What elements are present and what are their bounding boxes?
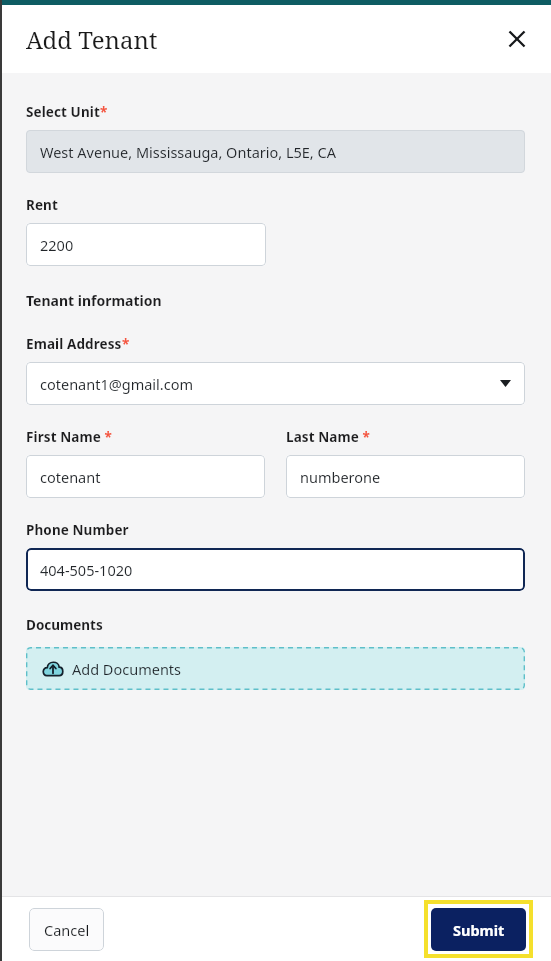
- staticText: Email Address: [26, 335, 122, 353]
- button[interactable]: cotenant: [26, 455, 265, 498]
- button[interactable]: 2200: [26, 223, 266, 266]
- staticText: *: [122, 335, 130, 353]
- button[interactable]: 404-505-1020: [26, 548, 525, 591]
- staticText: *: [101, 428, 112, 446]
- staticText: Rent: [26, 196, 58, 214]
- button[interactable]: Add Documents: [26, 647, 525, 690]
- staticText: Last Name: [286, 428, 359, 446]
- staticText: cotenant: [40, 467, 101, 487]
- staticText: 2200: [40, 235, 74, 255]
- button[interactable]: Close: [497, 19, 537, 59]
- staticText: Documents: [26, 616, 103, 634]
- staticText: West Avenue, Mississauga, Ontario, L5E, …: [40, 142, 336, 162]
- staticText: Cancel: [44, 920, 90, 940]
- button[interactable]: Cancel: [29, 908, 104, 951]
- button[interactable]: cotenant1@gmail.com: [26, 362, 525, 405]
- staticText: *: [100, 103, 108, 121]
- button[interactable]: West Avenue, Mississauga, Ontario, L5E, …: [26, 130, 525, 173]
- staticText: Add Documents: [72, 659, 182, 679]
- button[interactable]: numberone: [286, 455, 525, 498]
- staticText: First Name: [26, 428, 101, 446]
- staticText: cotenant1@gmail.com: [40, 374, 194, 394]
- staticText: Tenant information: [26, 291, 162, 310]
- staticText: Submit: [453, 920, 505, 940]
- staticText: numberone: [300, 467, 381, 487]
- button[interactable]: Submit: [428, 904, 529, 954]
- staticText: Phone Number: [26, 521, 129, 539]
- staticText: Select Unit: [26, 103, 100, 121]
- staticText: *: [359, 428, 370, 446]
- staticText: 404-505-1020: [40, 560, 133, 580]
- staticText: Add Tenant: [26, 23, 158, 56]
